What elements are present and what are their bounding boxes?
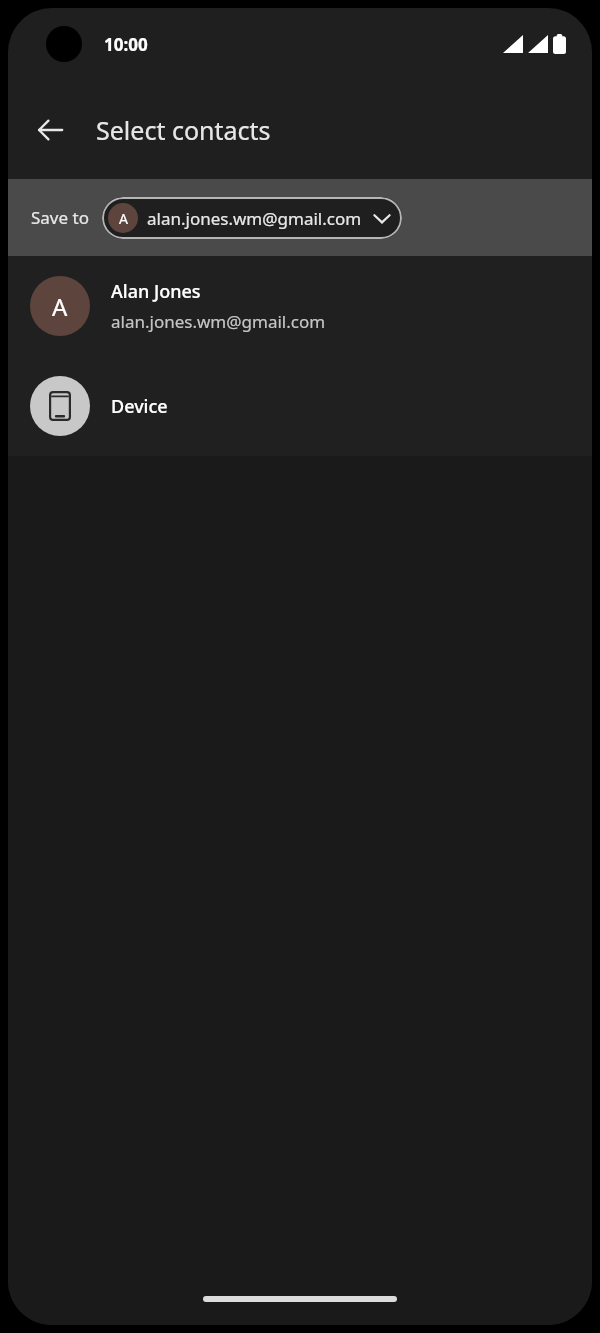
staticText: alan.jones.wm@gmail.com: [147, 207, 362, 230]
staticText: 10:00: [104, 33, 148, 56]
staticText: Device: [111, 394, 168, 419]
staticText: A: [119, 209, 128, 228]
button[interactable]: A: [102, 197, 402, 239]
staticText: Alan Jones: [111, 279, 201, 304]
staticText: alan.jones.wm@gmail.com: [111, 310, 326, 333]
button[interactable]: A: [8, 256, 592, 356]
staticText: Save to: [31, 206, 89, 229]
staticText: A: [52, 290, 68, 323]
button[interactable]: Back: [24, 104, 76, 156]
button[interactable]: Device: [8, 356, 592, 456]
staticText: Select contacts: [96, 113, 271, 147]
